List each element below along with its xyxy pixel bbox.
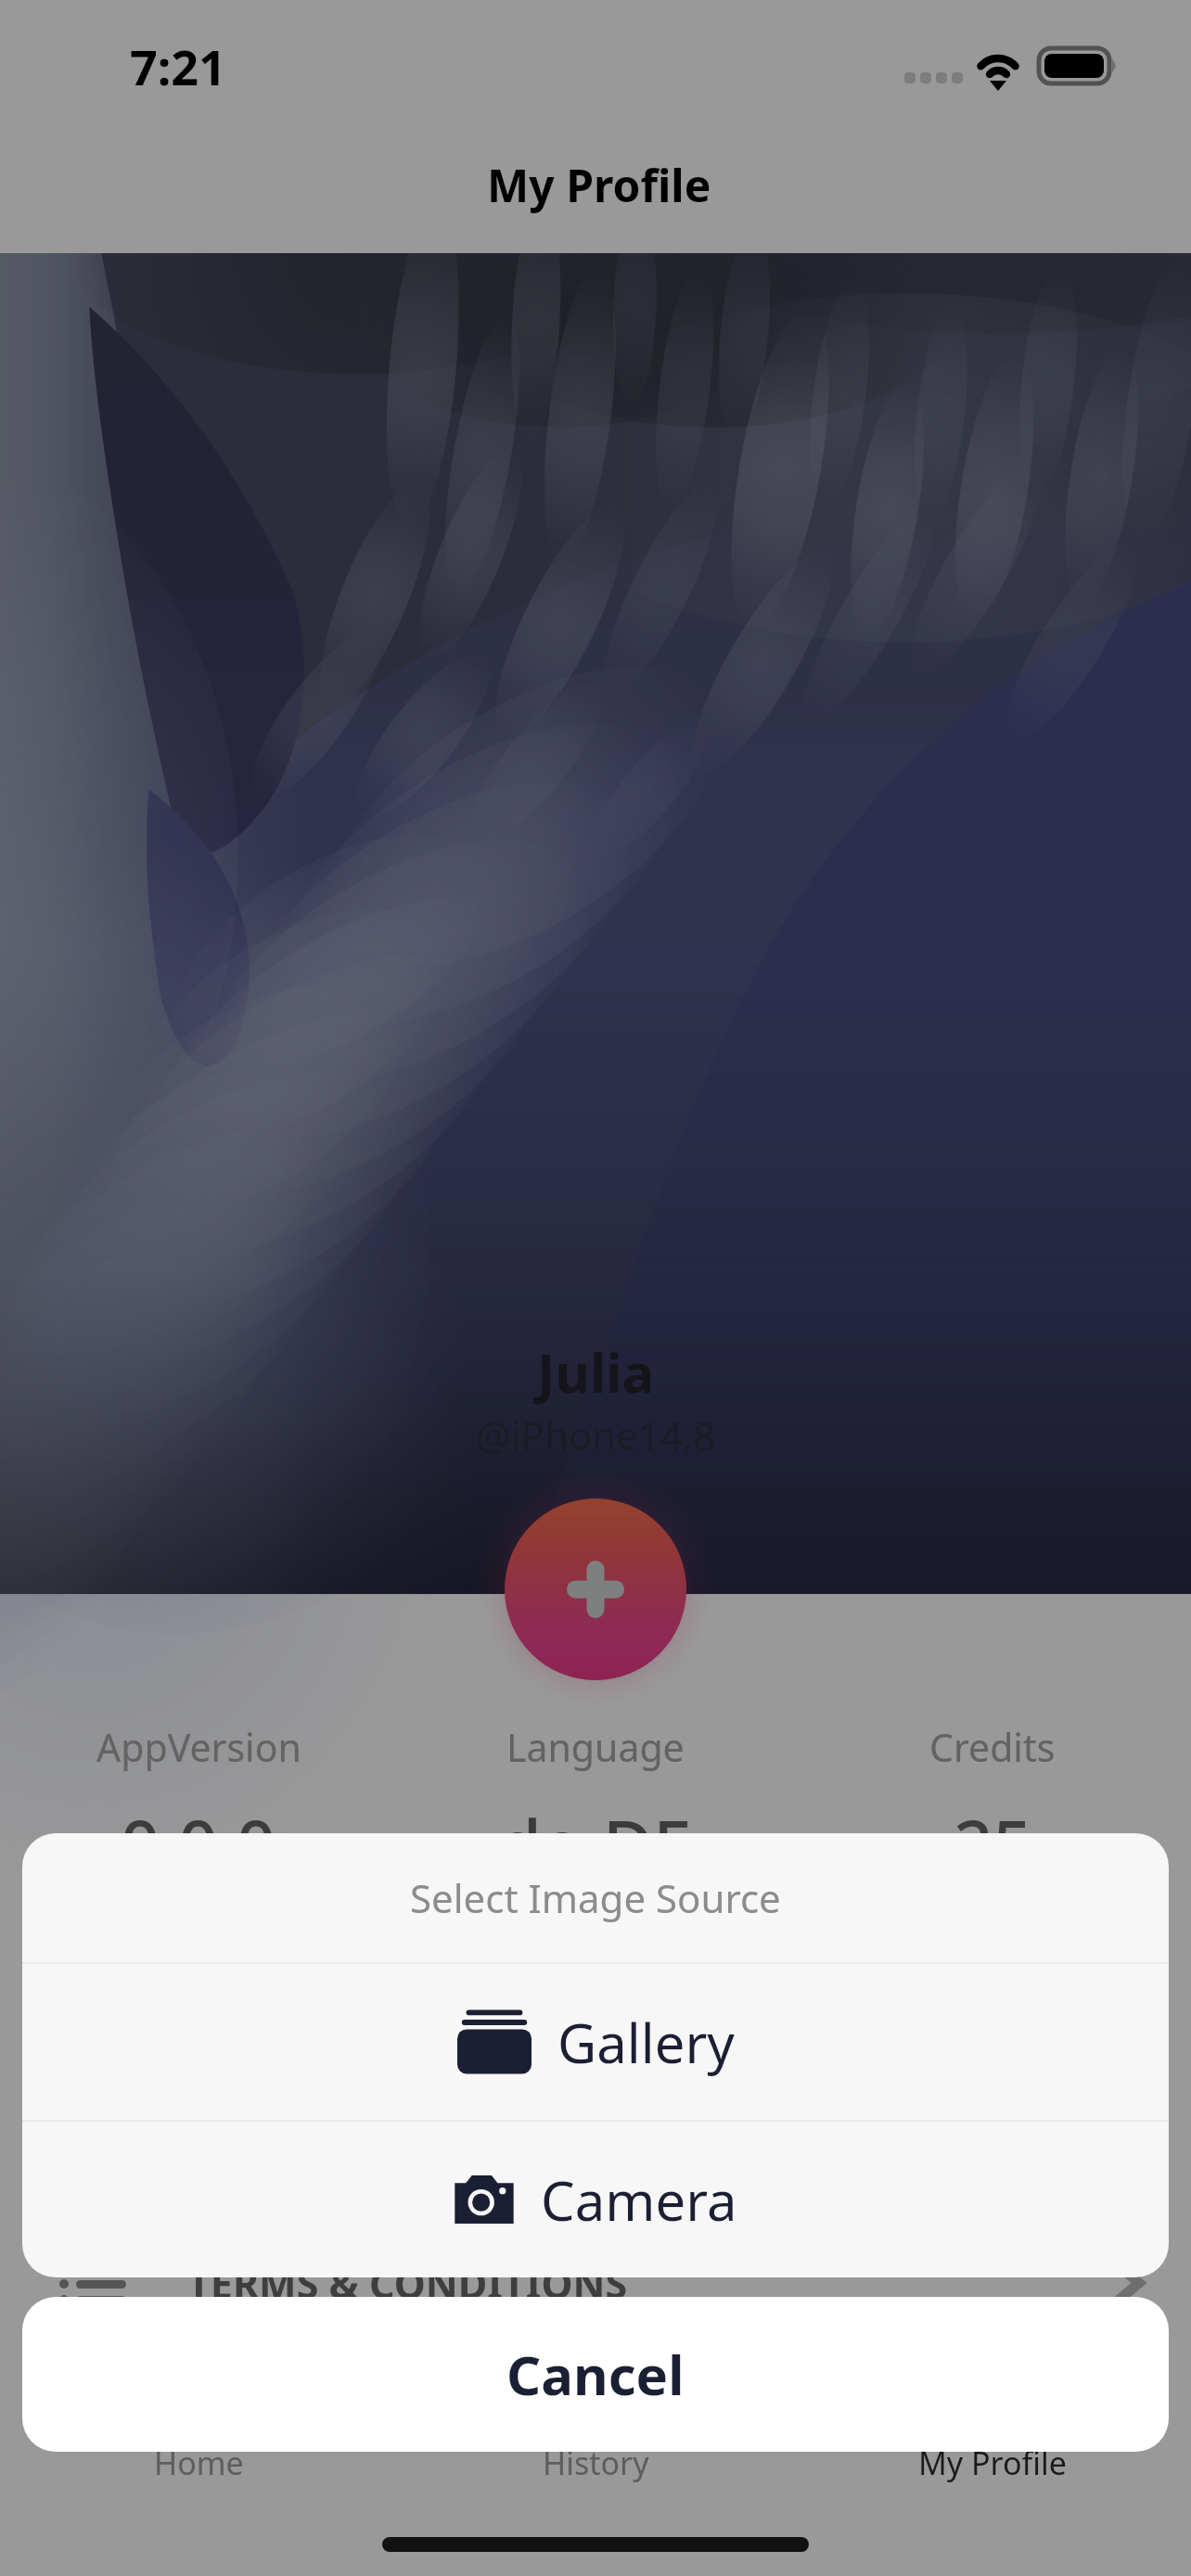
button[interactable]: Gallery: [22, 1964, 1169, 2120]
staticText: AppVersion: [96, 1721, 301, 1773]
staticText: Home: [154, 2442, 244, 2484]
staticText: @iPhone14,8: [476, 1409, 716, 1461]
staticText: Language: [506, 1721, 685, 1773]
staticText: Credits: [929, 1721, 1056, 1773]
staticText: History: [543, 2442, 649, 2484]
button[interactable]: My Profile: [794, 2412, 1191, 2514]
staticText: Select Image Source: [410, 1871, 781, 1924]
staticText: de-DE: [499, 1797, 692, 1891]
button[interactable]: Add profile photo: [505, 1498, 686, 1680]
staticText: 0.0.0: [121, 1797, 276, 1891]
staticText: 25: [954, 1797, 1032, 1891]
button[interactable]: Home: [0, 2412, 397, 2514]
staticText: Cancel: [506, 2338, 685, 2411]
staticText: Gallery: [557, 2006, 735, 2079]
staticText: My Profile: [918, 2442, 1067, 2484]
staticText: Julia: [537, 1335, 655, 1409]
button[interactable]: Cancel: [22, 2297, 1169, 2452]
staticText: Camera: [541, 2163, 737, 2237]
button[interactable]: History: [397, 2412, 794, 2514]
staticText: 7:21: [130, 33, 226, 99]
staticText: TERMS & CONDITIONS: [187, 2256, 628, 2311]
staticText: My Profile: [487, 155, 711, 215]
button[interactable]: TERMS & CONDITIONS: [0, 2233, 1191, 2333]
button[interactable]: Camera: [22, 2122, 1169, 2277]
